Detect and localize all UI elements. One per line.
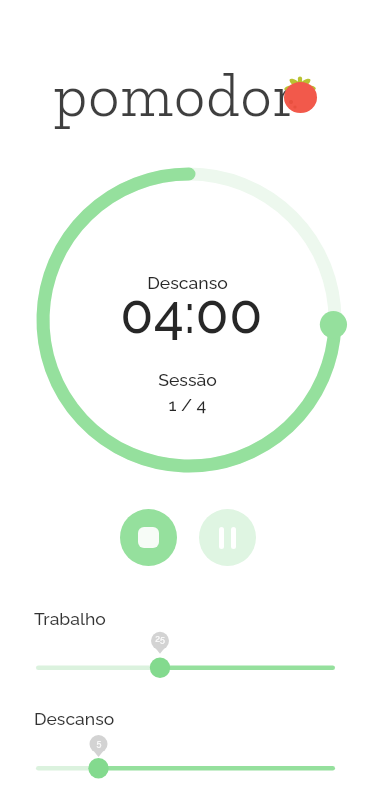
staticText: Descanso bbox=[0, 272, 375, 293]
staticText: 5 bbox=[84, 738, 114, 749]
button[interactable] bbox=[199, 509, 256, 566]
button[interactable] bbox=[120, 509, 177, 566]
staticText: 04:00 bbox=[4, 282, 375, 345]
staticText: 1 / 4 bbox=[0, 394, 375, 415]
button[interactable] bbox=[34, 754, 337, 782]
staticText: Descanso bbox=[34, 709, 115, 730]
staticText: pomodor bbox=[54, 58, 300, 131]
staticText: 25 bbox=[145, 634, 175, 645]
button[interactable] bbox=[34, 654, 337, 682]
staticText: Trabalho bbox=[34, 609, 106, 630]
staticText: Sessão bbox=[0, 369, 375, 390]
